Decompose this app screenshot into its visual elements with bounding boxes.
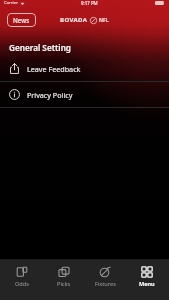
staticText: Carrier xyxy=(4,0,18,6)
staticText: BOVADA xyxy=(60,16,88,24)
button[interactable]: News xyxy=(7,13,36,27)
button[interactable]: Fixtures xyxy=(85,264,125,290)
button[interactable]: Privacy Policy xyxy=(0,82,169,107)
staticText: Leave Feedback xyxy=(27,64,81,74)
staticText: Privacy Policy xyxy=(27,90,73,100)
staticText: NFL xyxy=(99,17,109,24)
staticText: Fixtures xyxy=(95,280,116,288)
button[interactable]: Menu xyxy=(127,264,167,290)
staticText: 9:17 PM xyxy=(81,0,98,6)
staticText: General Setting xyxy=(9,42,71,53)
staticText: Odds xyxy=(15,280,29,288)
staticText: Menu xyxy=(139,280,155,288)
staticText: News xyxy=(13,16,30,24)
staticText: Picks xyxy=(57,280,71,288)
button[interactable]: Leave Feedback xyxy=(0,56,169,81)
button[interactable]: Odds xyxy=(2,264,42,290)
button[interactable]: Picks xyxy=(44,264,84,290)
